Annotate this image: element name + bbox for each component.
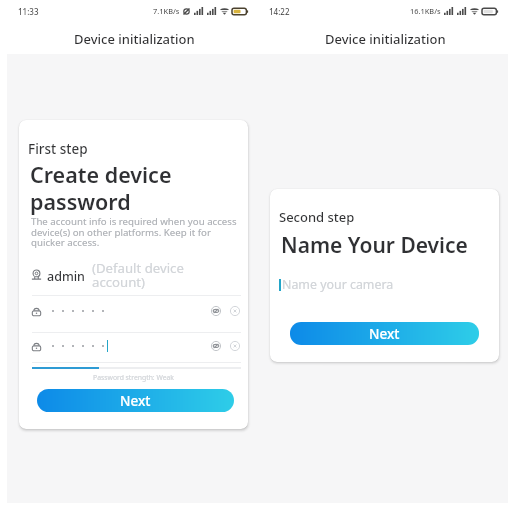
staticText: Device initialization	[325, 30, 446, 48]
staticText: Device initialization	[74, 30, 195, 48]
button[interactable]: Password field	[19, 296, 248, 326]
button[interactable]: Next	[290, 322, 479, 345]
button[interactable]: Password field	[19, 331, 248, 361]
button[interactable]: Next	[37, 389, 234, 412]
button[interactable]: Device account	[19, 260, 248, 295]
staticText: Next	[369, 325, 400, 343]
staticText: Password strength: Weak	[19, 373, 248, 382]
button[interactable]: Show password	[211, 306, 221, 316]
staticText: 7.1KB/s	[153, 6, 180, 16]
button[interactable]: Show password	[211, 341, 221, 351]
staticText: The account info is required when you ac…	[31, 215, 241, 249]
staticText: 11:33	[18, 6, 39, 17]
button[interactable]: Clear	[230, 341, 240, 351]
staticText: 14:22	[269, 6, 290, 17]
button[interactable]: Name your camera	[279, 271, 469, 299]
staticText: Next	[120, 392, 151, 410]
staticText: (Default device account)	[92, 259, 187, 290]
button[interactable]: Clear	[230, 306, 240, 316]
staticText: Name Your Device	[281, 231, 468, 260]
staticText: admin	[47, 268, 85, 285]
staticText: Second step	[279, 208, 355, 226]
staticText: First step	[28, 140, 88, 158]
staticText: Create device password	[30, 160, 230, 216]
staticText: 16.1KB/s	[410, 6, 441, 16]
staticText: Name your camera	[282, 276, 394, 293]
